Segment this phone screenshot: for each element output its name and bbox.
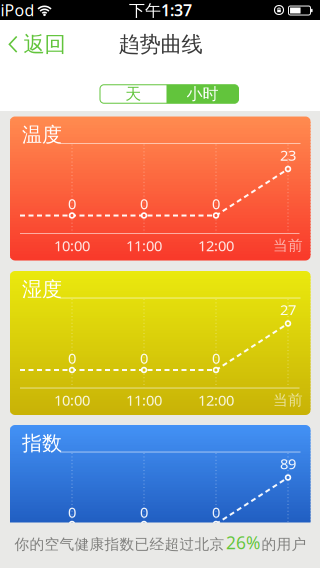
staticText: 当前 — [273, 391, 303, 409]
staticText: 天 — [125, 84, 141, 104]
staticText: 下午1:37 — [129, 0, 192, 21]
staticText: 趋势曲线 — [118, 31, 202, 58]
staticText: 湿度 — [22, 277, 62, 302]
staticText: 0 — [212, 348, 220, 368]
staticText: 10:00 — [54, 236, 90, 255]
staticText: 小时 — [186, 84, 218, 104]
staticText: 0 — [68, 502, 76, 522]
staticText: 12:00 — [198, 544, 234, 564]
staticText: 89 — [280, 454, 296, 473]
button[interactable]: 返回 — [8, 31, 65, 58]
staticText: 0 — [140, 502, 148, 522]
staticText: 0 — [68, 194, 76, 213]
staticText: 11:00 — [126, 390, 162, 410]
staticText: 0 — [212, 194, 220, 213]
staticText: 27 — [280, 300, 296, 319]
staticText: 返回 — [23, 31, 65, 58]
staticText: 12:00 — [198, 236, 234, 255]
staticText: 温度 — [22, 122, 62, 147]
staticText: 的用户 — [261, 535, 306, 553]
staticText: 10:00 — [54, 544, 90, 564]
staticText: 0 — [68, 348, 76, 368]
staticText: 26% — [226, 531, 260, 554]
staticText: iPod — [0, 0, 34, 21]
staticText: 10:00 — [54, 390, 90, 410]
staticText: 0 — [140, 348, 148, 368]
button[interactable]: 小时 — [166, 85, 238, 103]
staticText: 23 — [280, 145, 296, 165]
staticText: 0 — [212, 502, 220, 522]
staticText: 当前 — [273, 545, 303, 563]
staticText: 0 — [140, 194, 148, 213]
staticText: 11:00 — [126, 544, 162, 564]
staticText: 11:00 — [126, 236, 162, 255]
staticText: 你的空气健康指数已经超过北京 — [14, 535, 224, 553]
button[interactable]: 天 — [100, 85, 166, 103]
staticText: 当前 — [273, 236, 303, 254]
staticText: 12:00 — [198, 390, 234, 410]
staticText: 指数 — [22, 431, 62, 456]
